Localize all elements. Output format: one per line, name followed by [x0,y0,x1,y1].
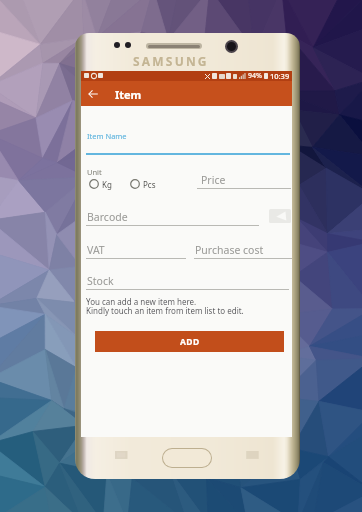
button[interactable]: Back [84,83,101,104]
button[interactable]: Scan barcode [269,209,291,223]
staticText: SAMSUNG [133,53,209,69]
staticText: 10:39 [270,71,290,81]
staticText: You can add a new item here. [86,296,197,307]
staticText: Unit [87,167,102,177]
staticText: Pcs [143,179,156,190]
button[interactable]: ADD [95,331,284,352]
button[interactable]: Purchase cost [194,242,292,260]
staticText: Price [201,173,226,187]
button[interactable]: Price [197,172,291,190]
staticText: Stock [87,274,114,288]
staticText: Purchase cost [195,243,264,257]
button[interactable]: Kg [89,178,112,190]
button[interactable]: Barcode [86,209,259,227]
staticText: Item [115,87,142,102]
button[interactable]: Pcs [130,178,156,190]
staticText: ADD [180,336,200,348]
button[interactable] [86,127,290,157]
staticText: VAT [87,243,105,257]
staticText: Kg [102,179,112,190]
button[interactable]: VAT [86,242,186,260]
staticText: Barcode [87,210,128,224]
button[interactable]: Stock [86,273,289,291]
staticText: 94% [248,71,262,81]
staticText: Item Name [87,131,127,141]
staticText: Kindly touch an item from item list to e… [86,305,244,316]
